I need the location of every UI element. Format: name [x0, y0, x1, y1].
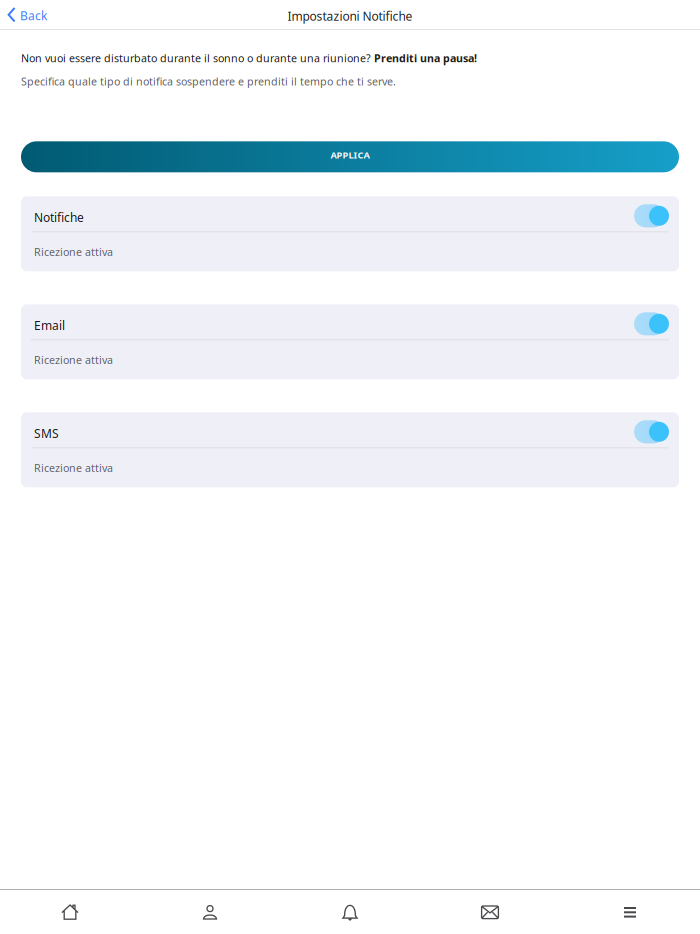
- button[interactable]: Home: [0, 890, 140, 934]
- staticText: Email: [34, 317, 65, 333]
- staticText: SMS: [34, 425, 59, 441]
- button[interactable]: Notifications: [280, 890, 420, 934]
- button[interactable]: Menu: [560, 890, 700, 934]
- staticText: APPLICA: [330, 149, 369, 161]
- staticText: Non vuoi essere disturbato durante il so…: [21, 51, 477, 65]
- button[interactable]: Email: [21, 304, 679, 379]
- staticText: Specifica quale tipo di notifica sospend…: [21, 74, 396, 88]
- staticText: Ricezione attiva: [34, 461, 113, 475]
- button[interactable]: SMS: [21, 412, 679, 487]
- staticText: Ricezione attiva: [34, 245, 113, 259]
- staticText: Ricezione attiva: [34, 353, 113, 367]
- staticText: Impostazioni Notifiche: [287, 8, 412, 24]
- button[interactable]: Messages: [420, 890, 560, 934]
- button[interactable]: Back: [0, 0, 55, 29]
- button[interactable]: APPLICA: [21, 141, 679, 172]
- staticText: Notifiche: [34, 209, 84, 225]
- button[interactable]: Profile: [140, 890, 280, 934]
- button[interactable]: Notifiche: [21, 196, 679, 271]
- staticText: Back: [20, 7, 47, 23]
